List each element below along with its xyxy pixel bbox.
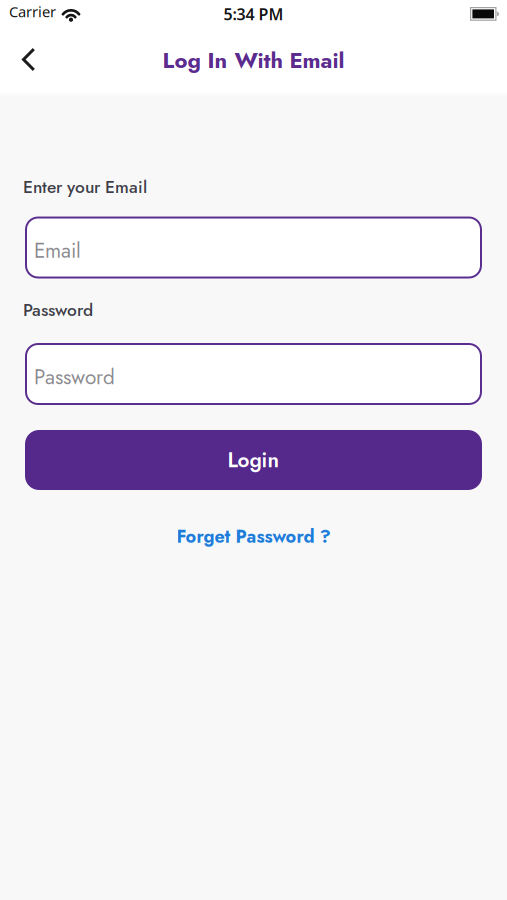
staticText: Enter your Email	[23, 174, 147, 199]
staticText: 5:34 PM	[223, 3, 283, 25]
staticText: Forget Password ?	[176, 523, 330, 549]
staticText: Login	[227, 445, 279, 475]
staticText: Password	[34, 362, 115, 392]
staticText: Log In With Email	[162, 44, 344, 76]
button[interactable]	[0, 28, 35, 71]
button[interactable]: Email	[25, 216, 482, 278]
button[interactable]: Forget Password ?	[176, 513, 330, 559]
button[interactable]: Password	[25, 343, 482, 405]
staticText: Carrier	[9, 2, 56, 21]
button[interactable]: Login	[25, 430, 482, 490]
staticText: Email	[34, 236, 81, 265]
staticText: Password	[23, 297, 93, 322]
